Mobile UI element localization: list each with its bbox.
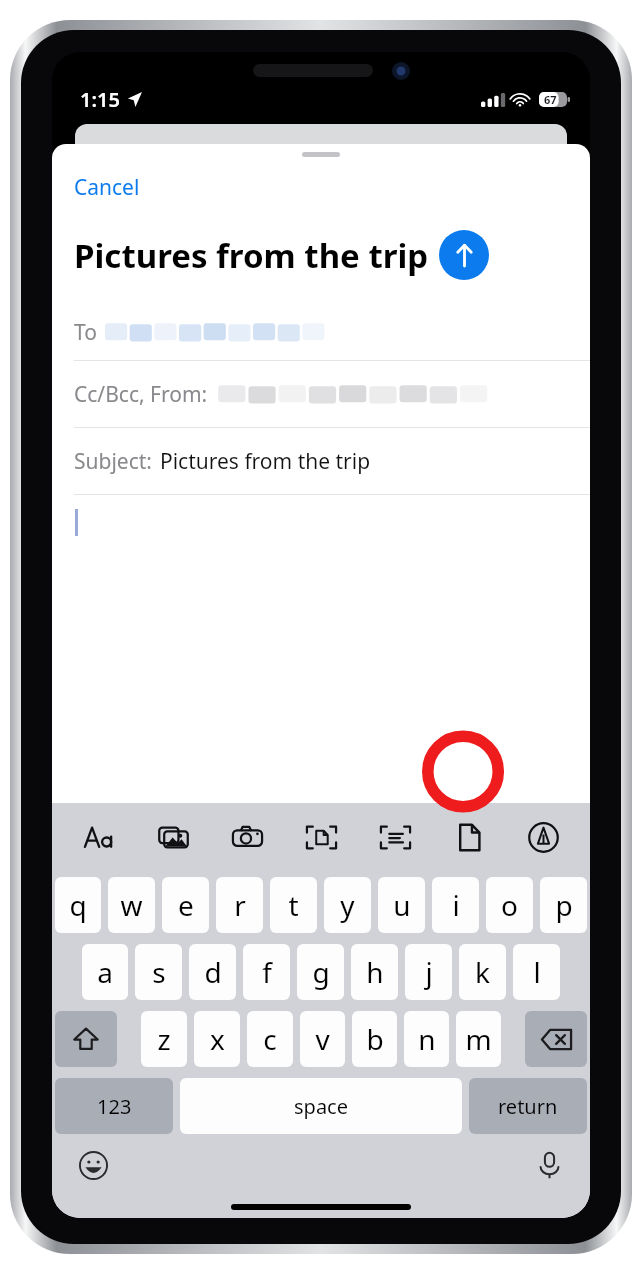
staticText: j bbox=[425, 953, 433, 991]
button[interactable]: Markup bbox=[516, 810, 570, 864]
button[interactable]: return bbox=[469, 1078, 587, 1134]
staticText: space bbox=[294, 1093, 348, 1120]
button[interactable]: Send bbox=[439, 230, 489, 280]
staticText: Pictures from the trip bbox=[160, 447, 371, 476]
staticText: i bbox=[452, 886, 460, 924]
button[interactable]: a bbox=[82, 944, 128, 1000]
staticText: w bbox=[120, 886, 143, 924]
staticText: Pictures from the trip bbox=[74, 233, 429, 278]
staticText: 67 bbox=[544, 92, 557, 107]
button[interactable]: f bbox=[243, 944, 290, 1000]
staticText: Cancel bbox=[74, 173, 140, 202]
staticText: m bbox=[465, 1020, 492, 1058]
staticText: 1:15 bbox=[80, 86, 120, 113]
button[interactable]: t bbox=[270, 877, 317, 933]
button[interactable]: i bbox=[432, 877, 479, 933]
button[interactable]: d bbox=[189, 944, 236, 1000]
button[interactable]: e bbox=[162, 877, 209, 933]
button[interactable]: q bbox=[55, 877, 101, 933]
staticText: y bbox=[340, 886, 355, 924]
button[interactable]: z bbox=[141, 1011, 187, 1067]
button[interactable]: c bbox=[247, 1011, 293, 1067]
button[interactable]: b bbox=[352, 1011, 397, 1067]
staticText: t bbox=[288, 886, 299, 924]
staticText: p bbox=[555, 886, 573, 924]
button[interactable]: x bbox=[194, 1011, 240, 1067]
button[interactable]: y bbox=[324, 877, 371, 933]
staticText: s bbox=[152, 953, 166, 991]
staticText: v bbox=[315, 1020, 330, 1058]
staticText: z bbox=[157, 1020, 171, 1058]
button[interactable]: Dictate bbox=[528, 1144, 570, 1186]
staticText: To bbox=[74, 318, 97, 347]
button[interactable]: r bbox=[216, 877, 263, 933]
button[interactable]: w bbox=[108, 877, 155, 933]
button[interactable]: Emoji bbox=[72, 1144, 114, 1186]
button[interactable]: Scan text bbox=[368, 810, 422, 864]
staticText: c bbox=[263, 1020, 277, 1058]
button[interactable]: u bbox=[378, 877, 425, 933]
button[interactable]: o bbox=[486, 877, 533, 933]
staticText: f bbox=[262, 953, 272, 991]
button[interactable]: m bbox=[456, 1011, 501, 1067]
button[interactable] bbox=[52, 495, 590, 1218]
button[interactable]: 123 bbox=[55, 1078, 173, 1134]
staticText: l bbox=[533, 953, 541, 991]
button[interactable]: Text formatting bbox=[72, 810, 126, 864]
button[interactable]: Cancel bbox=[52, 171, 162, 204]
staticText: e bbox=[178, 886, 194, 924]
staticText: o bbox=[501, 886, 518, 924]
button[interactable]: Attach file bbox=[442, 810, 496, 864]
button[interactable]: Insert photo bbox=[146, 810, 200, 864]
button[interactable]: Delete bbox=[525, 1011, 587, 1067]
button[interactable]: Cc/Bcc, From: bbox=[52, 361, 590, 427]
staticText: x bbox=[210, 1020, 225, 1058]
button[interactable]: p bbox=[540, 877, 587, 933]
staticText: 123 bbox=[97, 1093, 132, 1120]
staticText: h bbox=[366, 953, 384, 991]
button[interactable]: n bbox=[404, 1011, 449, 1067]
button[interactable]: Scan document bbox=[294, 810, 348, 864]
button[interactable]: k bbox=[459, 944, 506, 1000]
staticText: n bbox=[418, 1020, 436, 1058]
staticText: r bbox=[234, 886, 246, 924]
staticText: return bbox=[498, 1093, 558, 1120]
staticText: u bbox=[393, 886, 411, 924]
staticText: d bbox=[204, 953, 222, 991]
button[interactable]: l bbox=[513, 944, 560, 1000]
staticText: q bbox=[69, 886, 87, 924]
button[interactable]: s bbox=[135, 944, 182, 1000]
button[interactable]: g bbox=[297, 944, 344, 1000]
button[interactable]: h bbox=[351, 944, 398, 1000]
staticText: Subject: bbox=[74, 447, 152, 476]
staticText: k bbox=[475, 953, 490, 991]
button[interactable]: To bbox=[52, 304, 590, 360]
button[interactable]: Take photo bbox=[220, 810, 274, 864]
button[interactable]: Shift bbox=[55, 1011, 117, 1067]
button[interactable]: Subject: bbox=[52, 428, 590, 494]
button[interactable]: space bbox=[180, 1078, 462, 1134]
staticText: g bbox=[312, 953, 330, 991]
staticText: Cc/Bcc, From: bbox=[74, 380, 208, 409]
staticText: a bbox=[97, 953, 113, 991]
button[interactable]: j bbox=[405, 944, 452, 1000]
button[interactable]: v bbox=[300, 1011, 345, 1067]
staticText: b bbox=[366, 1020, 384, 1058]
